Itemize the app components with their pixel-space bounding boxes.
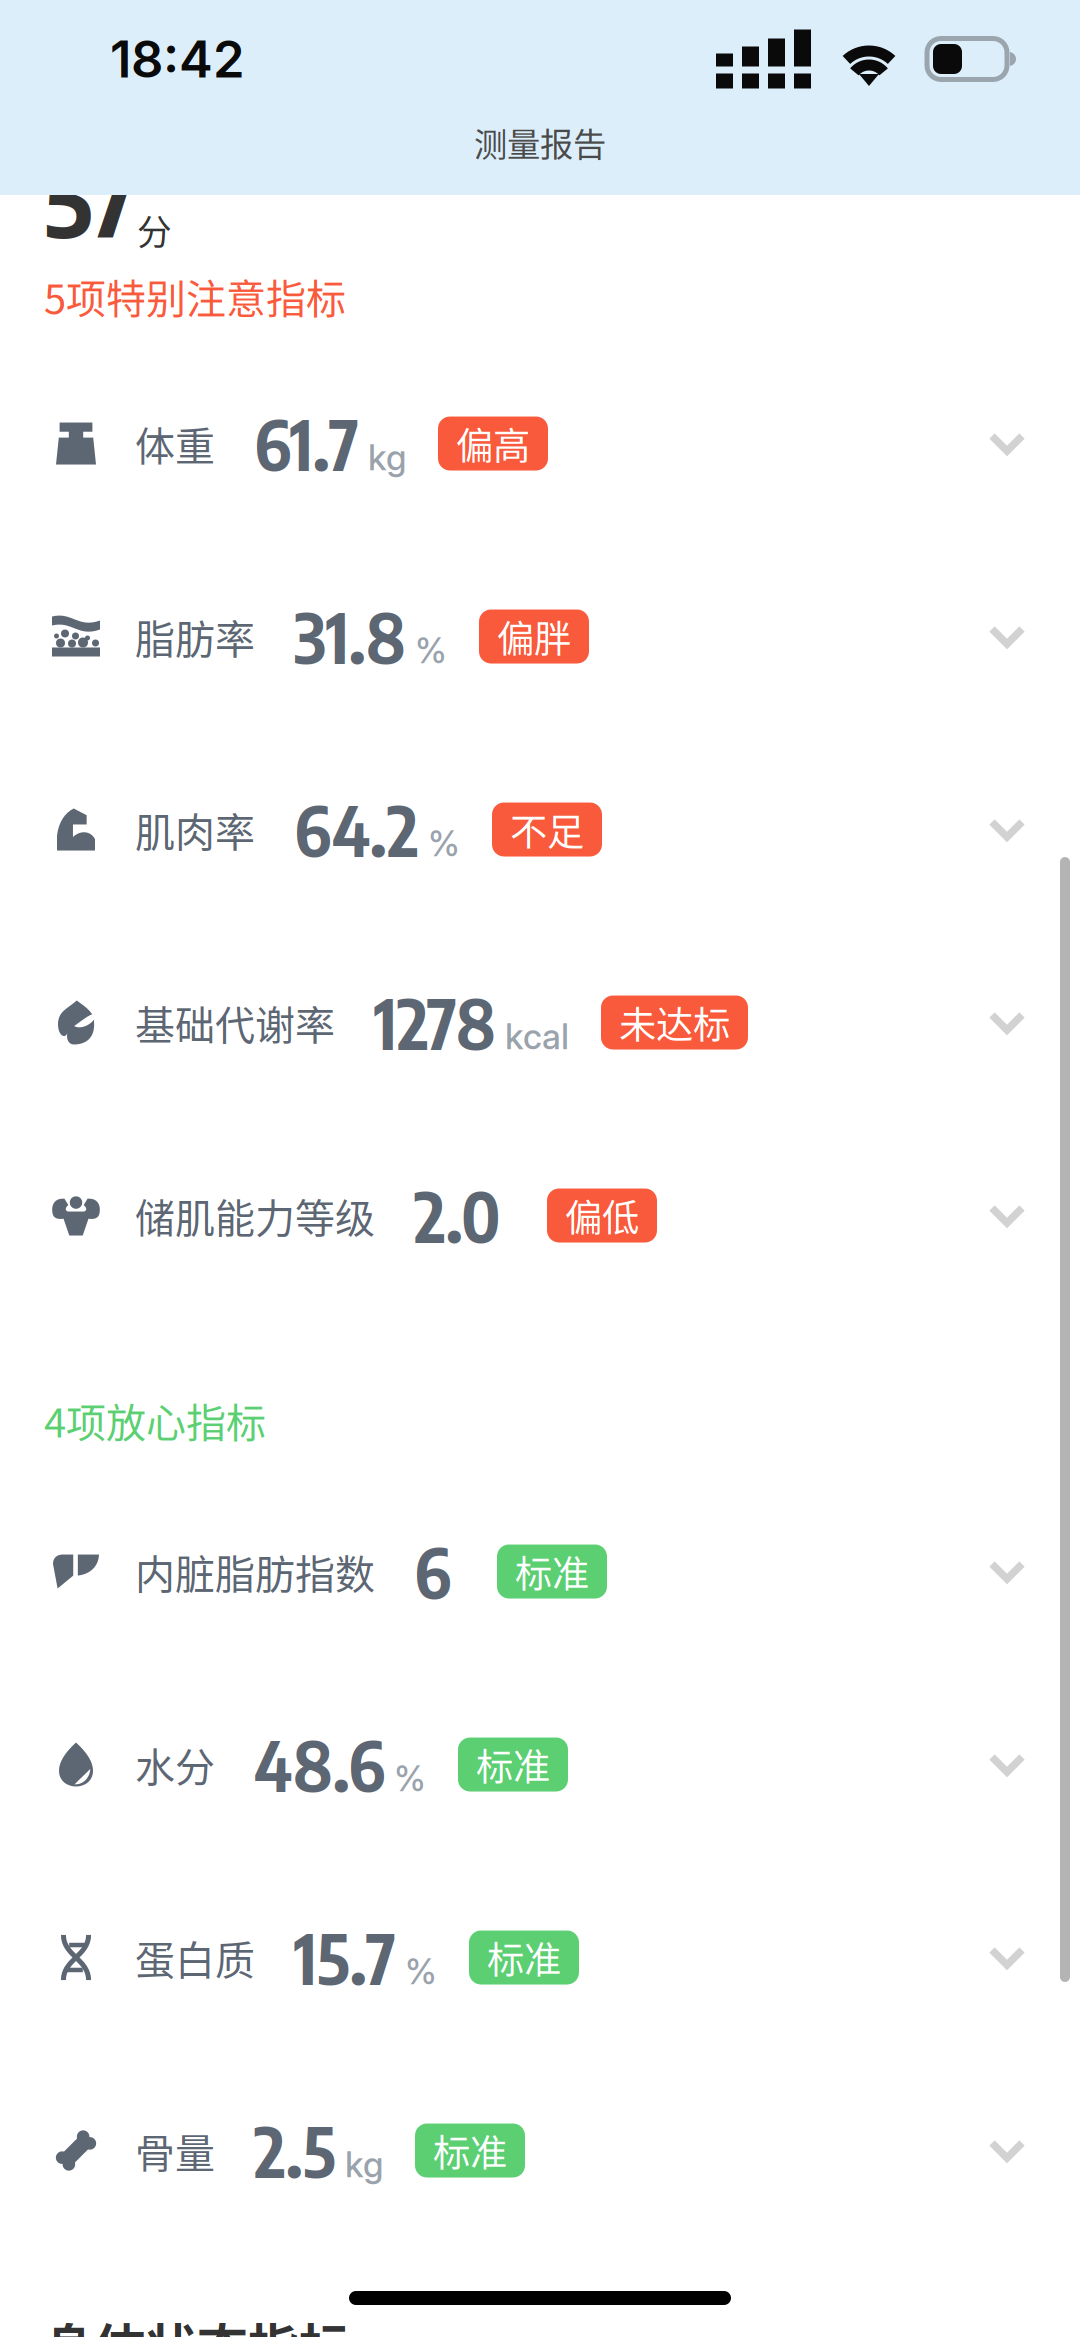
staticText: 4项放心指标 bbox=[44, 1391, 266, 1449]
staticText: 1278 bbox=[374, 980, 496, 1065]
staticText: 体重 bbox=[135, 414, 215, 472]
button[interactable]: 蛋白质 bbox=[0, 1861, 1080, 2054]
staticText: 标准 bbox=[487, 1930, 561, 1985]
staticText: 水分 bbox=[135, 1735, 215, 1793]
staticText: 18:42 bbox=[110, 28, 245, 90]
staticText: 31.8 bbox=[294, 594, 406, 679]
staticText: 肌肉率 bbox=[135, 800, 255, 858]
staticText: % bbox=[394, 1758, 426, 1799]
staticText: 标准 bbox=[515, 1544, 589, 1599]
staticText: 标准 bbox=[433, 2123, 507, 2178]
staticText: 偏胖 bbox=[497, 609, 571, 664]
staticText: 57 bbox=[44, 134, 137, 260]
button[interactable]: 骨量 bbox=[0, 2054, 1080, 2247]
staticText: 储肌能力等级 bbox=[135, 1186, 375, 1244]
staticText: 骨量 bbox=[135, 2121, 215, 2179]
staticText: % bbox=[415, 630, 447, 671]
staticText: 内脏脂肪指数 bbox=[135, 1542, 375, 1600]
staticText: 48.6 bbox=[254, 1722, 385, 1807]
button[interactable]: 储肌能力等级 bbox=[0, 1119, 1080, 1312]
staticText: 2.5 bbox=[254, 2108, 336, 2193]
staticText: % bbox=[405, 1951, 437, 1992]
staticText: 不足 bbox=[510, 802, 584, 857]
button[interactable]: 内脏脂肪指数 bbox=[0, 1475, 1080, 1668]
staticText: 6 bbox=[414, 1529, 451, 1614]
staticText: 15.7 bbox=[294, 1915, 396, 2000]
staticText: 偏高 bbox=[456, 416, 530, 471]
button[interactable]: 脂肪率 bbox=[0, 540, 1080, 733]
staticText: kg bbox=[345, 2144, 383, 2185]
staticText: 蛋白质 bbox=[135, 1928, 255, 1986]
staticText: 5项特别注意指标 bbox=[44, 267, 346, 325]
button[interactable]: 体重 bbox=[0, 347, 1080, 540]
staticText: 脂肪率 bbox=[135, 607, 255, 665]
staticText: 64.2 bbox=[294, 787, 419, 872]
staticText: 2.0 bbox=[414, 1173, 501, 1258]
staticText: kg bbox=[368, 437, 406, 478]
staticText: 61.7 bbox=[254, 401, 359, 486]
staticText: 未达标 bbox=[619, 995, 730, 1050]
button[interactable]: 肌肉率 bbox=[0, 733, 1080, 926]
staticText: kcal bbox=[505, 1016, 569, 1057]
staticText: 身体状态指标 bbox=[44, 2308, 350, 2337]
button[interactable]: 水分 bbox=[0, 1668, 1080, 1861]
staticText: 测量报告 bbox=[474, 118, 606, 166]
staticText: % bbox=[428, 823, 460, 864]
staticText: 分 bbox=[137, 205, 172, 255]
staticText: 偏低 bbox=[565, 1188, 639, 1243]
button[interactable]: 基础代谢率 bbox=[0, 926, 1080, 1119]
staticText: 标准 bbox=[476, 1737, 550, 1792]
staticText: 基础代谢率 bbox=[135, 993, 335, 1051]
